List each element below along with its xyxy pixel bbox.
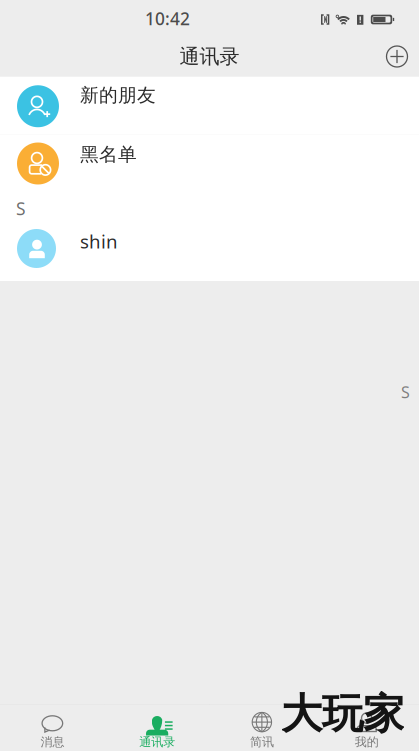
staticText: 黑名单 (80, 143, 137, 166)
staticText: 我的 (355, 735, 379, 749)
button[interactable]: 简讯 (209, 705, 314, 751)
button[interactable]: shin (0, 221, 419, 281)
staticText: S (16, 197, 26, 220)
button[interactable]: Add (375, 34, 419, 77)
staticText: S (401, 381, 410, 403)
staticText: shin (80, 229, 118, 254)
staticText: 通讯录 (179, 44, 239, 69)
button[interactable]: 黑名单 (0, 135, 419, 193)
button[interactable]: 新的朋友 (0, 77, 419, 135)
button[interactable]: 通讯录 (105, 705, 210, 751)
staticText: 大玩家 (281, 689, 404, 739)
staticText: 通讯录 (139, 735, 175, 749)
button[interactable]: 消息 (0, 705, 105, 751)
button[interactable]: 我的 (314, 705, 419, 751)
staticText: 10:42 (145, 7, 190, 30)
staticText: 新的朋友 (80, 84, 156, 107)
staticText: 简讯 (250, 735, 274, 749)
staticText: 消息 (40, 735, 64, 749)
